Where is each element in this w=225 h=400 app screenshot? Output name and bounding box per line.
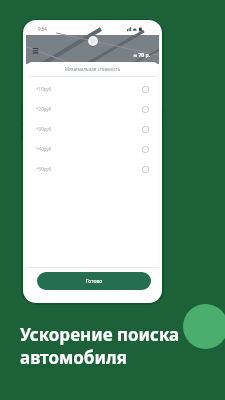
button[interactable]: +50руб: [26, 159, 159, 179]
staticText: +40руб: [36, 146, 52, 152]
staticText: Готово: [86, 278, 103, 285]
staticText: +50руб: [36, 166, 52, 172]
button[interactable]: [29, 45, 41, 57]
button[interactable]: +30руб: [26, 119, 159, 139]
button[interactable]: +20руб: [26, 99, 159, 119]
staticText: ≈ 70 р.: [133, 52, 151, 59]
button[interactable]: Готово: [37, 272, 151, 290]
button[interactable]: +40руб: [26, 139, 159, 159]
staticText: +10руб: [36, 86, 52, 92]
staticText: Минимальная стоимость: [65, 66, 121, 72]
staticText: автомобиля: [20, 346, 127, 369]
staticText: 9:54: [38, 26, 47, 32]
staticText: +30руб: [36, 126, 52, 132]
staticText: +20руб: [36, 106, 52, 112]
staticText: Ускорение поиска: [20, 323, 180, 346]
button[interactable]: +10руб: [26, 79, 159, 99]
